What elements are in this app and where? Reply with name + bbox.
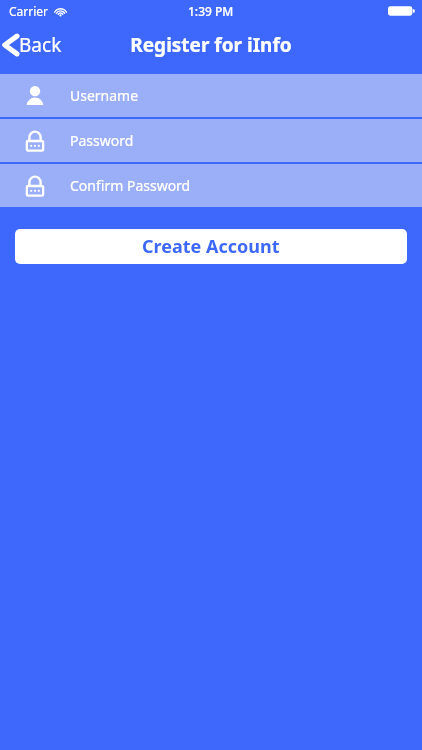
button[interactable]: Create Account <box>15 229 407 264</box>
button[interactable]: Username <box>0 74 422 117</box>
staticText: Confirm Password <box>70 176 191 195</box>
staticText: Carrier <box>9 3 49 19</box>
staticText: Username <box>70 86 139 105</box>
staticText: Back <box>19 32 62 58</box>
button[interactable]: Confirm Password <box>0 164 422 207</box>
button[interactable]: Back <box>0 28 72 62</box>
staticText: Password <box>70 131 134 150</box>
staticText: 1:39 PM <box>188 3 234 19</box>
button[interactable]: Password <box>0 119 422 162</box>
staticText: Register for iInfo <box>130 32 292 58</box>
staticText: Create Account <box>142 234 280 259</box>
